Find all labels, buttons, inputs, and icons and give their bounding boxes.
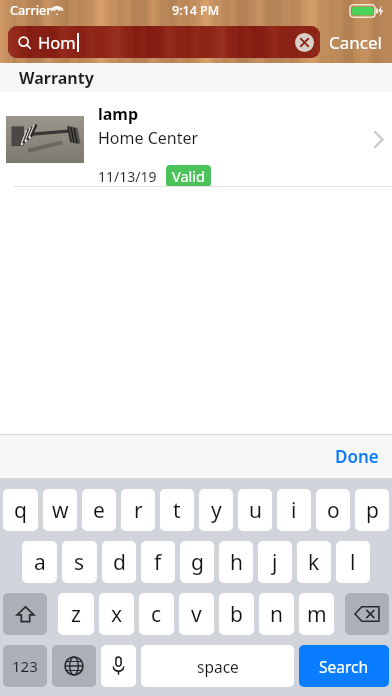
staticText: n bbox=[270, 600, 283, 629]
staticText: d bbox=[113, 548, 126, 577]
staticText: Done bbox=[335, 445, 379, 468]
button[interactable]: Backspace bbox=[345, 593, 389, 635]
staticText: i bbox=[291, 496, 297, 525]
staticText: Search bbox=[319, 656, 369, 677]
button[interactable]: s bbox=[62, 541, 97, 583]
staticText: p bbox=[366, 496, 379, 525]
button[interactable]: h bbox=[219, 541, 253, 583]
staticText: Valid bbox=[172, 166, 205, 186]
staticText: m bbox=[307, 600, 327, 629]
button[interactable]: e bbox=[82, 489, 116, 531]
button[interactable]: m bbox=[299, 593, 334, 635]
staticText: o bbox=[327, 496, 340, 525]
button[interactable]: Shift bbox=[3, 593, 47, 635]
button[interactable]: d bbox=[102, 541, 136, 583]
staticText: b bbox=[230, 600, 243, 629]
button[interactable]: u bbox=[238, 489, 272, 531]
staticText: j bbox=[272, 548, 278, 577]
button[interactable]: space bbox=[141, 645, 294, 687]
staticText: space bbox=[197, 656, 239, 677]
staticText: Carrier bbox=[10, 2, 52, 19]
staticText: 11/13/19 bbox=[98, 167, 157, 186]
button[interactable]: b bbox=[219, 593, 254, 635]
staticText: e bbox=[93, 496, 105, 525]
staticText: y bbox=[211, 496, 222, 525]
button[interactable]: Dictate bbox=[101, 645, 136, 687]
staticText: lamp bbox=[98, 103, 139, 125]
staticText: k bbox=[308, 548, 320, 577]
button[interactable]: Clear text bbox=[295, 33, 314, 52]
staticText: Cancel bbox=[329, 31, 382, 54]
staticText: h bbox=[230, 548, 243, 577]
staticText: 9:14 PM bbox=[172, 2, 220, 19]
staticText: r bbox=[134, 496, 143, 525]
staticText: Home Center bbox=[98, 127, 199, 149]
button[interactable]: l bbox=[336, 541, 370, 583]
staticText: q bbox=[14, 496, 27, 525]
staticText: u bbox=[249, 496, 262, 525]
button[interactable]: f bbox=[141, 541, 175, 583]
button[interactable]: g bbox=[180, 541, 214, 583]
button[interactable]: r bbox=[121, 489, 155, 531]
staticText: 123 bbox=[12, 656, 38, 676]
button[interactable]: n bbox=[259, 593, 294, 635]
staticText: Hom bbox=[38, 31, 76, 53]
staticText: v bbox=[191, 600, 202, 629]
button[interactable]: a bbox=[22, 541, 57, 583]
staticText: s bbox=[74, 548, 85, 577]
button[interactable]: p bbox=[355, 489, 389, 531]
button[interactable]: k bbox=[297, 541, 331, 583]
button[interactable]: Next keyboard bbox=[52, 645, 96, 687]
button[interactable]: z bbox=[58, 593, 94, 635]
staticText: w bbox=[52, 496, 69, 525]
button[interactable]: lamp bbox=[0, 92, 392, 187]
button[interactable]: Hom bbox=[8, 26, 320, 58]
staticText: t bbox=[173, 496, 181, 525]
staticText: z bbox=[71, 600, 81, 629]
button[interactable]: t bbox=[160, 489, 194, 531]
button[interactable]: Search bbox=[299, 645, 389, 687]
button[interactable]: 123 bbox=[3, 645, 47, 687]
staticText: Warranty bbox=[19, 67, 94, 89]
staticText: c bbox=[151, 600, 162, 629]
button[interactable]: w bbox=[43, 489, 77, 531]
staticText: f bbox=[154, 548, 162, 577]
button[interactable]: q bbox=[3, 489, 38, 531]
button[interactable]: Cancel bbox=[329, 31, 382, 54]
button[interactable]: j bbox=[258, 541, 292, 583]
staticText: l bbox=[350, 548, 356, 577]
button[interactable]: y bbox=[199, 489, 233, 531]
button[interactable]: x bbox=[99, 593, 134, 635]
staticText: g bbox=[191, 548, 204, 577]
button[interactable]: v bbox=[179, 593, 214, 635]
button[interactable]: c bbox=[139, 593, 174, 635]
button[interactable]: i bbox=[277, 489, 311, 531]
button[interactable]: Done bbox=[335, 445, 379, 468]
staticText: a bbox=[34, 548, 46, 577]
button[interactable]: o bbox=[316, 489, 350, 531]
staticText: x bbox=[111, 600, 123, 629]
